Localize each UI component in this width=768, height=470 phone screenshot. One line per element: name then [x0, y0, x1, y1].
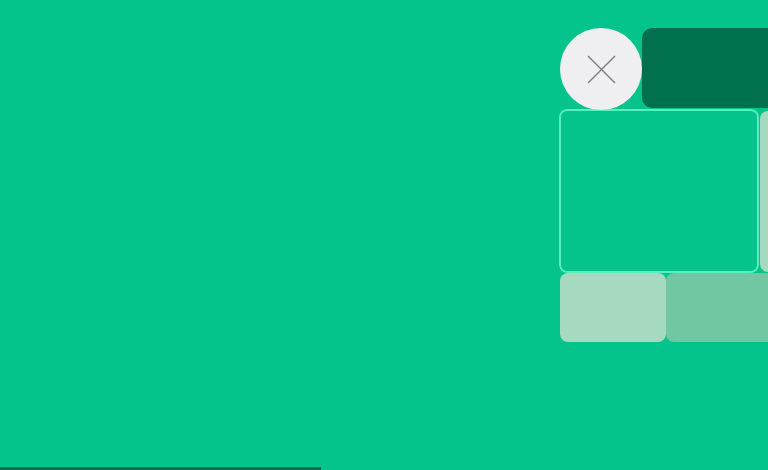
button[interactable]: Next item [760, 111, 768, 272]
button[interactable]: Preview card [559, 109, 759, 273]
button[interactable]: Tile two [666, 273, 768, 342]
button[interactable]: Close [560, 28, 642, 110]
button[interactable]: Tile one [560, 273, 666, 342]
button[interactable]: Featured card [642, 28, 768, 108]
